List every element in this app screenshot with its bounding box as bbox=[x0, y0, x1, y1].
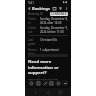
staticText: Reservation bbox=[28, 48, 38, 55]
button[interactable]: Edit bbox=[42, 80, 48, 86]
button[interactable]: Recents bbox=[58, 90, 63, 95]
staticText: Check out bbox=[28, 26, 38, 33]
staticText: Check in bbox=[28, 17, 38, 24]
staticText: Need more information or support? bbox=[28, 59, 59, 75]
staticText: ▮▴▮ bbox=[63, 1, 68, 4]
button[interactable]: Message bbox=[35, 80, 41, 86]
button[interactable]: CONFIRMED bbox=[50, 12, 68, 16]
staticText: Christian Kils bbox=[40, 38, 68, 42]
staticText: 1 x Apartment bbox=[40, 48, 68, 52]
staticText: Sunday, December 8, 2024 after 14:00 bbox=[40, 17, 68, 24]
button[interactable]: Calendar bbox=[52, 6, 57, 11]
staticText: CONFIRMED bbox=[51, 12, 67, 16]
button[interactable]: Documents bbox=[48, 80, 54, 86]
staticText: Last guest bbox=[28, 38, 38, 45]
button[interactable]: Back bbox=[27, 6, 32, 11]
button[interactable]: Home bbox=[46, 90, 51, 95]
staticText: Get in touch with our team bbox=[28, 77, 59, 80]
button[interactable]: More bbox=[62, 80, 68, 86]
button[interactable]: Back bbox=[33, 90, 38, 95]
staticText: Bookings bbox=[32, 6, 51, 11]
button[interactable]: Filter bbox=[58, 6, 63, 11]
button[interactable]: More options bbox=[64, 6, 69, 11]
button[interactable]: Help bbox=[55, 80, 61, 86]
staticText: Sunday, December 9, 2024 before 11:00 bbox=[40, 26, 68, 33]
button[interactable]: Call bbox=[28, 80, 34, 86]
staticText: 9:41 bbox=[28, 1, 34, 5]
staticText: Booking ID bbox=[28, 12, 44, 16]
